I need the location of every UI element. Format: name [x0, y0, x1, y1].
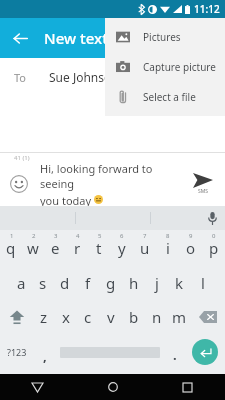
button[interactable]: Shift	[0, 300, 33, 334]
button[interactable]: Pictures	[105, 22, 225, 52]
staticText: Capture picture	[143, 60, 216, 74]
staticText: o	[186, 238, 196, 258]
button[interactable]: b	[122, 300, 145, 334]
button[interactable]: y	[110, 230, 133, 266]
staticText: 6	[120, 232, 124, 240]
staticText: j	[155, 273, 159, 293]
staticText: f	[85, 273, 91, 293]
button[interactable]: n	[145, 300, 168, 334]
staticText: .	[173, 346, 177, 364]
button[interactable]: Back	[0, 18, 40, 58]
staticText: c	[84, 307, 92, 327]
button[interactable]: l	[191, 266, 214, 300]
button[interactable]: d	[54, 266, 76, 300]
staticText: Pictures	[143, 30, 181, 44]
staticText: e	[51, 238, 60, 258]
staticText: a	[17, 273, 26, 293]
staticText: t	[96, 238, 102, 258]
staticText: b	[129, 307, 139, 327]
staticText: h	[129, 273, 139, 293]
button[interactable]: i	[156, 230, 179, 266]
staticText: y	[118, 238, 126, 258]
button[interactable]: g	[99, 266, 122, 300]
staticText: 8	[166, 232, 170, 240]
button[interactable]: Send SMS	[181, 161, 225, 206]
staticText: w	[27, 238, 39, 258]
button[interactable]: m	[168, 300, 191, 334]
staticText: 41 (1)	[14, 154, 30, 161]
button[interactable]: q	[0, 230, 22, 266]
button[interactable]: o	[179, 230, 202, 266]
button[interactable]: j	[145, 266, 168, 300]
button[interactable]: e	[44, 230, 66, 266]
button[interactable]: a	[10, 266, 32, 300]
button[interactable]: Back	[0, 374, 75, 400]
button[interactable]: r	[66, 230, 88, 266]
staticText: Select a file	[143, 90, 196, 104]
staticText: i	[166, 238, 170, 258]
staticText: Sue Johnson	[49, 69, 119, 85]
button[interactable]: Backspace	[191, 300, 225, 334]
staticText: 1	[10, 232, 14, 240]
staticText: New text	[44, 28, 108, 48]
staticText: ,	[43, 347, 47, 365]
button[interactable]: Capture picture	[105, 52, 225, 82]
button[interactable]: Enter	[185, 334, 225, 370]
staticText: z	[40, 307, 48, 327]
staticText: d	[60, 273, 70, 293]
button[interactable]: c	[77, 300, 99, 334]
button[interactable]: x	[55, 300, 77, 334]
staticText: you today	[40, 193, 94, 206]
button[interactable]: f	[76, 266, 99, 300]
staticText: ?123	[7, 346, 27, 358]
button[interactable]: v	[99, 300, 122, 334]
button[interactable]: Emoji	[8, 173, 30, 195]
button[interactable]: Space	[55, 334, 164, 370]
staticText: s	[39, 273, 47, 293]
button[interactable]: z	[33, 300, 55, 334]
button[interactable]: t	[88, 230, 110, 266]
staticText: To	[14, 70, 27, 85]
staticText: n	[152, 307, 162, 327]
staticText: p	[209, 238, 219, 258]
button[interactable]: Voice input	[151, 206, 225, 230]
button[interactable]: Select a file	[105, 82, 225, 112]
button[interactable]: To	[0, 58, 225, 96]
staticText: l	[201, 273, 205, 293]
button[interactable]: ?123	[0, 334, 34, 370]
staticText: 2	[32, 232, 36, 240]
staticText: v	[107, 307, 115, 327]
staticText: u	[140, 238, 150, 258]
button[interactable]: h	[122, 266, 145, 300]
button[interactable]: Home	[75, 374, 150, 400]
button[interactable]: Recent apps	[150, 374, 225, 400]
button[interactable]: s	[32, 266, 54, 300]
staticText: SMS	[198, 188, 209, 195]
staticText: 0	[212, 232, 216, 240]
staticText: m	[172, 307, 187, 327]
staticText: g	[106, 273, 116, 293]
staticText: x	[62, 307, 70, 327]
staticText: 9	[189, 232, 193, 240]
staticText: 3	[54, 232, 58, 240]
staticText: 11:12	[194, 2, 220, 16]
staticText: Hi, looking forward to seeing	[40, 161, 181, 191]
staticText: r	[74, 238, 81, 258]
staticText: q	[6, 238, 16, 258]
staticText: 4	[76, 232, 80, 240]
staticText: 5	[98, 232, 102, 240]
button[interactable]: w	[22, 230, 44, 266]
button[interactable]: u	[133, 230, 156, 266]
button[interactable]: k	[168, 266, 191, 300]
button[interactable]: ,	[34, 334, 55, 370]
button[interactable]: .	[164, 334, 185, 370]
staticText: k	[175, 273, 184, 293]
button[interactable]: p	[202, 230, 225, 266]
staticText: 7	[143, 232, 147, 240]
